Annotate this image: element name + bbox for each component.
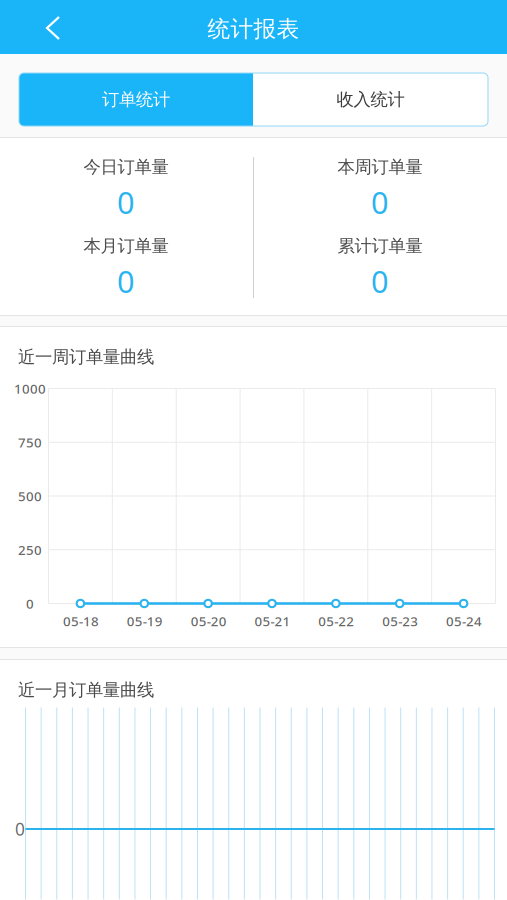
staticText: 05-20 — [191, 612, 227, 630]
staticText: 累计订单量 — [337, 235, 422, 257]
staticText: 近一周订单量曲线 — [18, 346, 154, 368]
staticText: 05-24 — [446, 612, 482, 630]
staticText: 本月订单量 — [83, 235, 168, 257]
staticText: 0 — [371, 182, 389, 222]
staticText: 05-23 — [382, 612, 418, 630]
staticText: 近一月订单量曲线 — [18, 679, 154, 701]
button[interactable]: 订单统计 — [19, 73, 253, 126]
staticText: 05-18 — [63, 612, 99, 630]
staticText: 0 — [117, 182, 135, 222]
staticText: 05-19 — [127, 612, 163, 630]
staticText: 订单统计 — [102, 89, 170, 110]
staticText: 0 — [26, 595, 34, 612]
staticText: 0 — [15, 817, 25, 840]
staticText: 750 — [18, 433, 42, 451]
staticText: 1000 — [14, 380, 46, 397]
staticText: 统计报表 — [207, 15, 299, 43]
button[interactable]: Back — [25, 2, 81, 54]
staticText: 05-21 — [254, 612, 290, 630]
staticText: 本周订单量 — [337, 156, 422, 178]
staticText: 500 — [18, 487, 42, 505]
staticText: 收入统计 — [336, 89, 404, 110]
button[interactable]: 收入统计 — [253, 73, 488, 126]
staticText: 0 — [117, 261, 135, 301]
staticText: 250 — [18, 541, 42, 559]
staticText: 05-22 — [318, 612, 354, 630]
staticText: 0 — [371, 261, 389, 301]
staticText: 今日订单量 — [83, 156, 168, 178]
